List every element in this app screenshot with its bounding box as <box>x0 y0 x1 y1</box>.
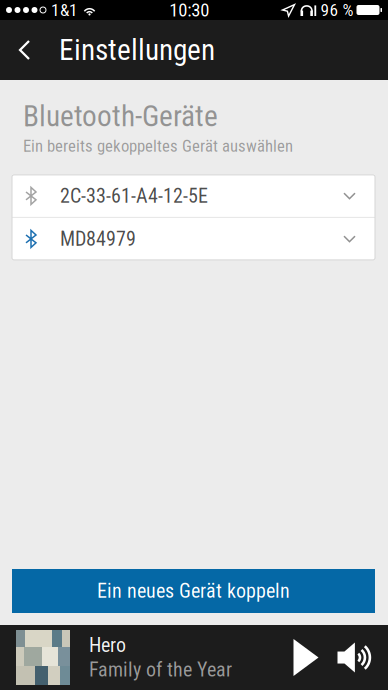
staticText: Hero <box>89 634 126 657</box>
staticText: Ein neues Gerät koppeln <box>97 579 290 603</box>
staticText: 2C-33-61-A4-12-5E <box>60 184 208 208</box>
staticText: 96 % <box>320 0 353 20</box>
staticText: Ein bereits gekoppeltes Gerät auswählen <box>23 136 293 156</box>
button[interactable]: MD84979 <box>12 218 375 260</box>
staticText: 1&1 <box>51 0 78 20</box>
staticText: Family of the Year <box>89 658 232 681</box>
staticText: 10:30 <box>169 0 209 21</box>
staticText: Bluetooth-Geräte <box>23 99 218 133</box>
button[interactable]: Ein neues Gerät koppeln <box>12 569 375 613</box>
button[interactable]: Volume <box>333 630 379 685</box>
button[interactable]: Back <box>7 20 42 80</box>
button[interactable]: 2C-33-61-A4-12-5E <box>12 175 375 217</box>
staticText: MD84979 <box>60 227 136 251</box>
button[interactable]: Now playing artwork <box>0 630 70 685</box>
button[interactable]: Play <box>279 630 333 685</box>
staticText: Einstellungen <box>59 33 215 67</box>
